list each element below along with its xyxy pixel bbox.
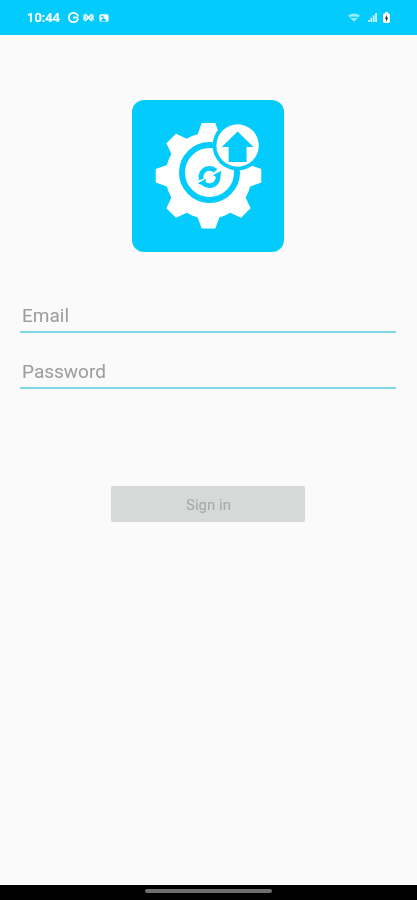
- staticText: 10:44: [27, 10, 61, 25]
- other: App logo: [132, 100, 284, 252]
- staticText: Sign in: [186, 496, 231, 514]
- staticText: Password: [22, 360, 106, 382]
- button[interactable]: Sign in: [111, 486, 305, 522]
- button[interactable]: Email: [20, 304, 396, 333]
- button[interactable]: Password: [20, 360, 396, 389]
- staticText: Email: [22, 304, 70, 326]
